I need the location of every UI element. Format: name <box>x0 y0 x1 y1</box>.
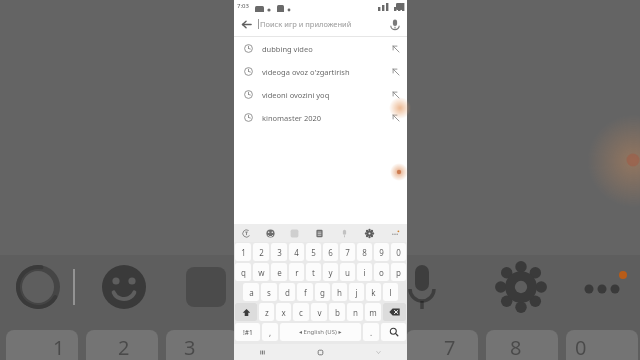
button[interactable]: c <box>293 303 309 321</box>
button[interactable]: kinomaster 2020 <box>234 106 407 129</box>
staticText: i <box>363 267 366 278</box>
staticText: videoga ovoz o'zgartirish <box>262 67 385 77</box>
staticText: 4 <box>249 334 261 360</box>
staticText: 8 <box>362 247 367 258</box>
button[interactable]: Settings <box>357 224 382 242</box>
staticText: p <box>396 267 401 278</box>
button[interactable]: 0 <box>391 243 406 261</box>
button[interactable]: 3 <box>271 243 287 261</box>
button[interactable]: r <box>289 263 304 281</box>
button[interactable]: Translate <box>234 224 258 242</box>
button[interactable]: dubbing video <box>234 37 407 60</box>
staticText: k <box>371 287 376 298</box>
button[interactable]: n <box>347 303 363 321</box>
staticText: f <box>304 287 307 298</box>
staticText: 5 <box>314 334 326 360</box>
button[interactable]: e <box>271 263 287 281</box>
button[interactable]: z <box>259 303 274 321</box>
staticText: t <box>312 267 315 278</box>
button[interactable]: s <box>261 283 277 301</box>
button[interactable]: 5 <box>306 243 321 261</box>
button[interactable]: b <box>329 303 345 321</box>
button[interactable]: Backspace <box>383 303 406 321</box>
button[interactable]: Home <box>291 344 349 360</box>
staticText: 6 <box>328 247 333 258</box>
button[interactable]: Insert suggestion <box>385 106 407 129</box>
button[interactable]: x <box>276 303 291 321</box>
button[interactable]: More options <box>382 224 407 242</box>
staticText: l <box>389 287 392 298</box>
button[interactable]: 1 <box>235 243 251 261</box>
button[interactable]: Clipboard <box>307 224 332 242</box>
staticText: 8 <box>510 334 522 360</box>
staticText: 4 <box>294 247 299 258</box>
staticText: 3 <box>184 334 196 360</box>
button[interactable]: Insert suggestion <box>385 37 407 60</box>
button[interactable]: videoni ovozini yoq <box>234 83 407 106</box>
button[interactable]: o <box>374 263 389 281</box>
staticText: , <box>269 327 272 338</box>
button[interactable]: t <box>306 263 321 281</box>
button[interactable]: j <box>349 283 364 301</box>
button[interactable]: Voice input <box>332 224 357 242</box>
staticText: d <box>285 287 290 298</box>
button[interactable]: w <box>253 263 269 281</box>
staticText: g <box>320 287 325 298</box>
button[interactable]: !#1 <box>235 323 260 341</box>
button[interactable]: , <box>262 323 278 341</box>
button[interactable]: v <box>311 303 327 321</box>
button[interactable]: 2 <box>253 243 269 261</box>
button[interactable]: i <box>357 263 372 281</box>
staticText: 1 <box>241 247 246 258</box>
button[interactable]: 7 <box>340 243 355 261</box>
button[interactable]: Insert suggestion <box>385 83 407 106</box>
staticText: v <box>317 307 322 318</box>
staticText: o <box>379 267 384 278</box>
button[interactable]: 6 <box>323 243 338 261</box>
button[interactable]: g <box>315 283 330 301</box>
button[interactable]: Insert suggestion <box>385 60 407 83</box>
button[interactable]: k <box>366 283 381 301</box>
staticText: 5 <box>311 247 316 258</box>
staticText: a <box>249 287 254 298</box>
button[interactable]: Recents <box>234 344 291 360</box>
button[interactable]: Stickers <box>282 224 307 242</box>
button[interactable]: Back <box>234 12 258 36</box>
button[interactable]: f <box>297 283 313 301</box>
staticText: !#1 <box>243 328 253 337</box>
staticText: 7:03 <box>237 2 249 10</box>
staticText: w <box>258 267 265 278</box>
button[interactable]: Emoji <box>258 224 282 242</box>
button[interactable]: Voice search <box>383 12 407 36</box>
staticText: h <box>337 287 342 298</box>
staticText: 0 <box>575 334 587 360</box>
staticText: 6 <box>379 334 391 360</box>
button[interactable]: . <box>363 323 379 341</box>
button[interactable]: a <box>243 283 259 301</box>
button[interactable]: y <box>323 263 338 281</box>
button[interactable]: 8 <box>357 243 372 261</box>
staticText: videoni ovozini yoq <box>262 90 385 100</box>
staticText: 0 <box>396 247 401 258</box>
button[interactable] <box>381 323 406 341</box>
button[interactable]: u <box>340 263 355 281</box>
button[interactable]: Shift <box>235 303 257 321</box>
button[interactable]: ◂ English (US) ▸ <box>280 323 361 341</box>
staticText: ◂ English (US) ▸ <box>299 328 342 336</box>
button[interactable]: 4 <box>289 243 304 261</box>
staticText: r <box>295 267 299 278</box>
button[interactable]: q <box>235 263 251 281</box>
button[interactable]: videoga ovoz o'zgartirish <box>234 60 407 83</box>
button[interactable]: l <box>383 283 398 301</box>
button[interactable]: d <box>279 283 295 301</box>
button[interactable]: h <box>332 283 347 301</box>
staticText: c <box>299 307 303 318</box>
staticText: j <box>355 287 358 298</box>
button[interactable]: p <box>391 263 406 281</box>
staticText: 9 <box>379 247 384 258</box>
staticText: Поиск игр и приложений <box>260 19 352 29</box>
button[interactable]: m <box>365 303 381 321</box>
button[interactable]: 9 <box>374 243 389 261</box>
staticText: 7 <box>345 247 350 258</box>
